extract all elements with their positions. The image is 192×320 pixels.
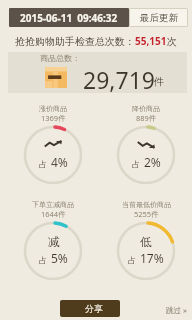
- button[interactable]: 最后更新: [129, 8, 188, 27]
- staticText: 减: [48, 234, 60, 247]
- staticText: 占: [128, 255, 136, 265]
- staticText: 抢抢购物助手检查总次数：: [15, 35, 135, 48]
- staticText: 商品总数：: [40, 53, 80, 63]
- staticText: 占: [39, 159, 47, 169]
- staticText: 17%: [140, 250, 164, 266]
- staticText: 降价商品: [132, 104, 160, 113]
- staticText: 下单立减商品: [32, 200, 74, 209]
- staticText: 4%: [51, 154, 68, 170]
- staticText: 889件: [136, 113, 157, 123]
- button[interactable]: 分享: [60, 300, 120, 317]
- staticText: 占: [39, 255, 47, 265]
- staticText: 2%: [144, 154, 161, 170]
- staticText: 分享: [85, 303, 103, 314]
- staticText: 涨价商品: [39, 104, 67, 113]
- staticText: 5%: [51, 250, 68, 266]
- staticText: 2015-06-11 09:46:32: [20, 11, 118, 25]
- staticText: 1369件: [41, 113, 66, 123]
- staticText: 5255件: [134, 209, 159, 219]
- staticText: 29,719: [83, 64, 155, 95]
- staticText: 55,151: [135, 34, 167, 48]
- staticText: 次: [167, 35, 177, 48]
- staticText: 跳过 »: [166, 305, 187, 315]
- staticText: 件: [154, 75, 164, 88]
- button[interactable]: 跳过 »: [164, 303, 189, 317]
- staticText: 最后更新: [140, 12, 178, 24]
- staticText: 当前最低价商品: [122, 200, 171, 209]
- staticText: 1644件: [41, 209, 66, 219]
- staticText: 占: [132, 159, 140, 169]
- staticText: 低: [140, 234, 152, 247]
